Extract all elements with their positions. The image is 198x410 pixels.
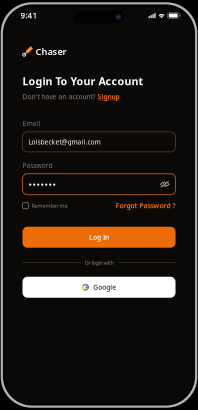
staticText: Email (22, 119, 40, 128)
staticText: Loisbecket@gmail.com (28, 137, 100, 146)
staticText: Don't have an account? (22, 92, 95, 101)
staticText: ••••••• (28, 178, 56, 190)
staticText: 9:41 (20, 10, 37, 21)
staticText: Login To Your Account (22, 74, 143, 88)
staticText: Or login with (84, 259, 113, 266)
staticText: Log In (89, 233, 109, 242)
staticText: Remember me (31, 202, 67, 209)
staticText: Chaser (35, 45, 66, 58)
staticText: Forgot Password ? (115, 201, 175, 210)
button[interactable]: Remember me (22, 202, 67, 209)
button[interactable]: Forgot Password ? (115, 201, 175, 210)
button[interactable]: Signup (97, 92, 119, 101)
button[interactable]: Log In (22, 227, 175, 248)
staticText: Password (22, 161, 52, 170)
button[interactable]: Show password (160, 180, 169, 188)
staticText: Google (93, 283, 116, 292)
button[interactable]: Google (22, 277, 175, 298)
staticText: Signup (97, 92, 119, 101)
